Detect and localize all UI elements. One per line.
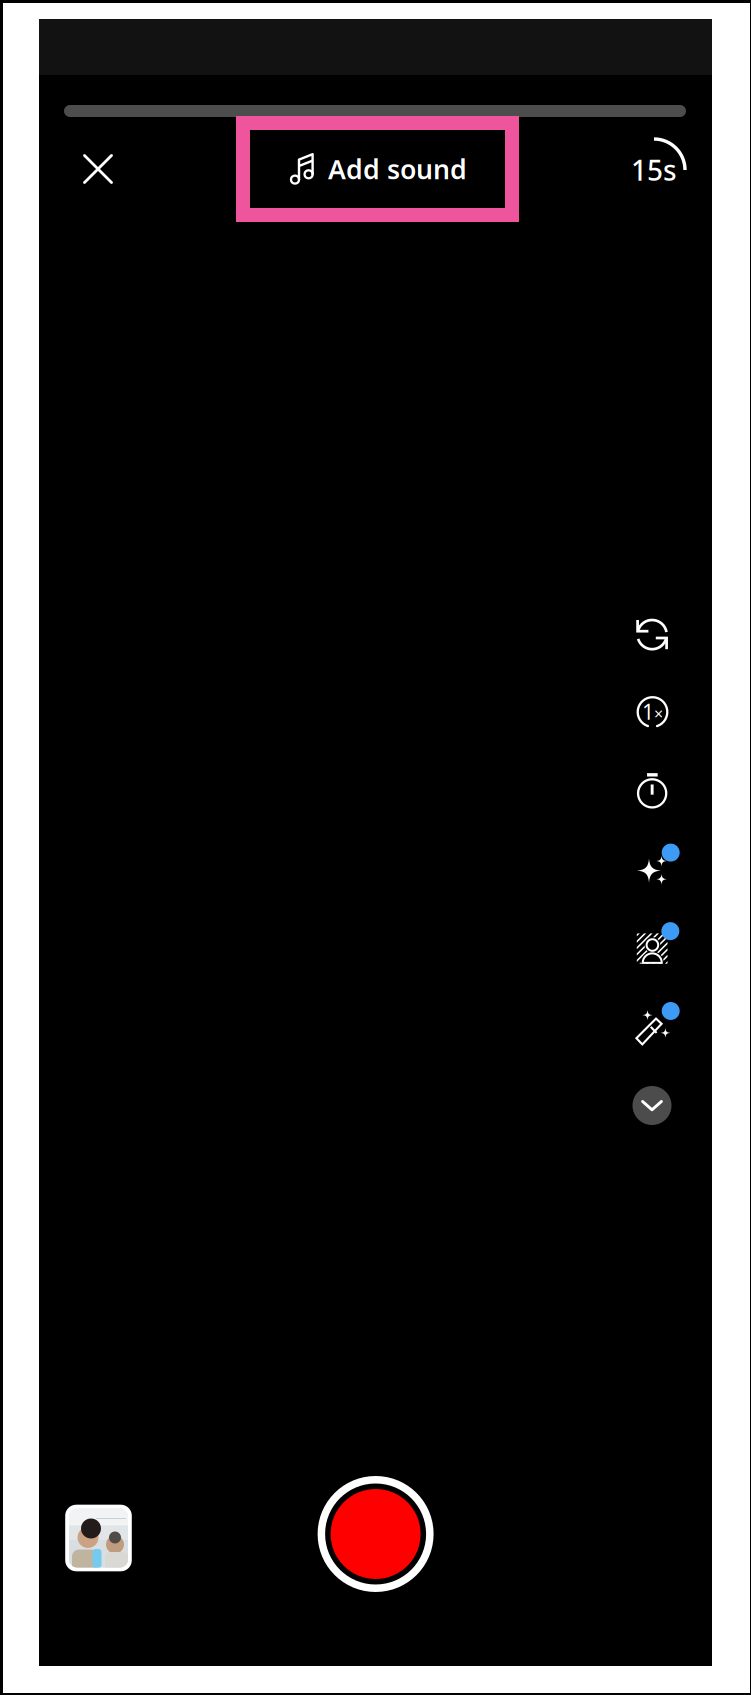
button[interactable]: Beauty xyxy=(624,920,680,976)
button[interactable]: Record xyxy=(317,1475,435,1593)
button[interactable]: Playback speed xyxy=(625,685,679,739)
button[interactable]: Open gallery xyxy=(65,1505,132,1571)
button[interactable]: Flip camera xyxy=(625,607,679,661)
button[interactable]: More tools xyxy=(625,1078,679,1132)
button[interactable]: Add sound xyxy=(236,116,519,222)
button[interactable]: Timer xyxy=(625,764,679,818)
button[interactable]: Enhance xyxy=(625,999,681,1055)
staticText: 15s xyxy=(631,151,677,189)
button[interactable]: Close xyxy=(61,132,135,206)
staticText: 1× xyxy=(642,697,663,726)
staticText: Add sound xyxy=(328,151,467,187)
button[interactable]: Filters xyxy=(624,842,680,898)
button[interactable]: Duration 15 seconds xyxy=(617,133,691,207)
